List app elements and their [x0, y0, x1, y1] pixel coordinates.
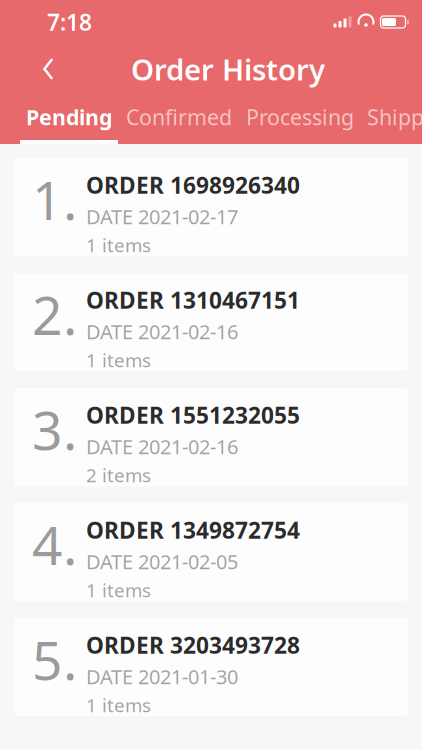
- staticText: Pending: [26, 103, 112, 131]
- staticText: 2 items: [86, 463, 151, 487]
- staticText: 5.: [32, 624, 77, 695]
- staticText: ORDER 1349872754: [86, 515, 300, 545]
- button[interactable]: 2.: [14, 273, 408, 371]
- staticText: 3.: [32, 394, 77, 465]
- staticText: 4.: [32, 509, 77, 580]
- button[interactable]: Processing: [240, 94, 360, 144]
- staticText: Shipped: [367, 103, 422, 131]
- staticText: ORDER 3203493728: [86, 630, 300, 660]
- staticText: Order History: [131, 49, 325, 88]
- button[interactable]: Shipped: [360, 94, 422, 144]
- button[interactable]: 4.: [14, 503, 408, 601]
- staticText: DATE 2021-02-05: [86, 548, 238, 575]
- staticText: ORDER 1551232055: [86, 400, 300, 430]
- staticText: 2.: [32, 279, 77, 350]
- staticText: DATE 2021-02-16: [86, 318, 238, 345]
- button[interactable]: Back: [25, 46, 71, 92]
- staticText: 1 items: [86, 233, 151, 257]
- button[interactable]: Pending: [20, 94, 118, 144]
- button[interactable]: 3.: [14, 388, 408, 486]
- staticText: 1 items: [86, 693, 151, 717]
- button[interactable]: Confirmed: [118, 94, 240, 144]
- staticText: DATE 2021-02-16: [86, 433, 238, 460]
- button[interactable]: 5.: [14, 618, 408, 716]
- staticText: Confirmed: [126, 103, 232, 131]
- staticText: 1.: [32, 164, 77, 235]
- staticText: 1 items: [86, 578, 151, 602]
- staticText: DATE 2021-02-17: [86, 203, 238, 230]
- staticText: 1 items: [86, 348, 151, 372]
- staticText: DATE 2021-01-30: [86, 663, 238, 690]
- staticText: ORDER 1310467151: [86, 285, 300, 315]
- staticText: 7:18: [47, 7, 92, 37]
- staticText: Processing: [246, 103, 354, 131]
- staticText: ORDER 1698926340: [86, 170, 300, 200]
- button[interactable]: 1.: [14, 158, 408, 256]
